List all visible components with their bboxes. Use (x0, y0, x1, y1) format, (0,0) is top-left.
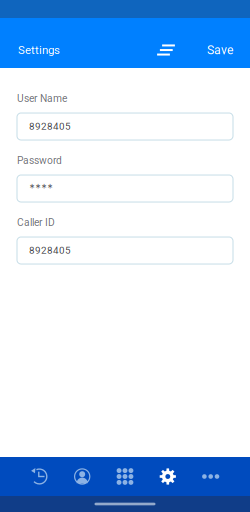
staticText: Save (207, 43, 234, 57)
button[interactable]: Recents (18, 457, 61, 496)
button[interactable]: 8928405 (17, 237, 233, 264)
button[interactable]: Contacts (61, 457, 104, 496)
button[interactable]: Sort (149, 37, 183, 63)
button[interactable]: Keypad (104, 457, 146, 496)
staticText: 8928405 (29, 121, 71, 132)
staticText: Settings (18, 43, 60, 57)
button[interactable]: ∗∗∗∗ (17, 175, 233, 202)
button[interactable]: 8928405 (17, 113, 233, 140)
staticText: Password (17, 154, 62, 166)
staticText: 8928405 (29, 245, 71, 256)
staticText: Caller ID (17, 216, 55, 228)
button[interactable]: Settings (0, 37, 70, 63)
button[interactable]: Save (197, 37, 250, 63)
button[interactable]: More (189, 457, 232, 496)
staticText: User Name (17, 92, 67, 104)
button[interactable]: Settings (146, 457, 189, 496)
staticText: ∗∗∗∗ (29, 182, 53, 190)
